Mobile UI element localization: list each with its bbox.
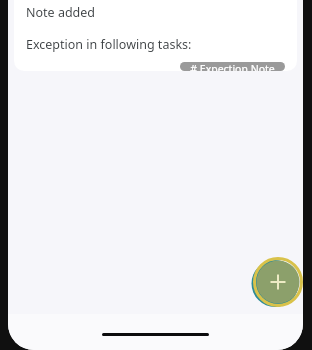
staticText: Note added bbox=[26, 4, 96, 21]
button[interactable]: Add bbox=[253, 257, 303, 307]
staticText: # Expection Note bbox=[190, 62, 275, 71]
staticText: Exception in following tasks: bbox=[26, 36, 192, 53]
button[interactable]: Note added bbox=[14, 0, 297, 71]
button[interactable]: # Expection Note bbox=[180, 62, 285, 71]
